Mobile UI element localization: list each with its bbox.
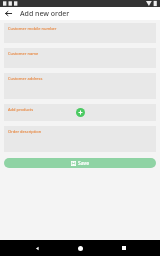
button[interactable]: Add product — [76, 108, 85, 117]
button[interactable]: Save — [4, 158, 156, 168]
button[interactable]: Customer mobile number — [4, 23, 156, 43]
button[interactable]: Recent apps — [117, 241, 131, 255]
staticText: Save — [78, 160, 90, 167]
button[interactable]: Customer address — [4, 73, 156, 99]
button[interactable]: Customer name — [4, 48, 156, 68]
staticText: Order description — [8, 129, 42, 134]
staticText: Add new order — [20, 9, 70, 19]
button[interactable]: Back — [3, 8, 14, 19]
button[interactable]: Order description — [4, 126, 156, 152]
staticText: Customer mobile number — [8, 26, 57, 31]
button[interactable]: Home — [73, 241, 87, 255]
staticText: Customer address — [8, 76, 43, 81]
staticText: Add products — [8, 107, 34, 112]
button[interactable]: Back — [30, 241, 44, 255]
staticText: Customer name — [8, 51, 39, 56]
